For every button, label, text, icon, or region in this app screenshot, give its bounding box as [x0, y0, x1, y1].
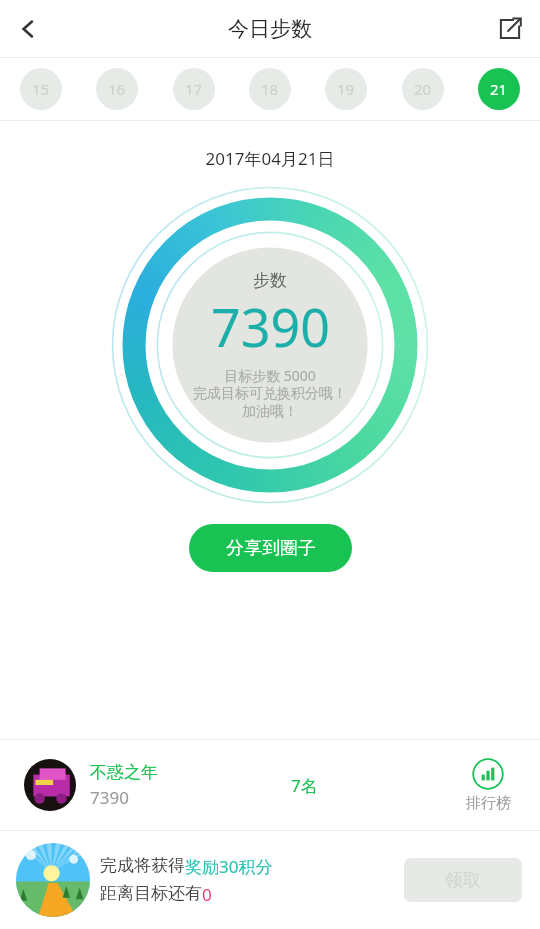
button[interactable]: Share [486, 5, 534, 53]
button[interactable]: 不惑之年 [0, 740, 540, 830]
staticText: 领取 [445, 869, 481, 892]
button[interactable]: Back [4, 5, 52, 53]
staticText: 完成将获得 [100, 855, 185, 876]
button[interactable]: 17 [173, 68, 215, 110]
staticText: 20 [414, 79, 432, 99]
staticText: 21 [490, 79, 508, 99]
staticText: 7390 [90, 786, 129, 809]
button[interactable]: 领取 [404, 858, 522, 902]
staticText: 距离目标还有 [100, 883, 202, 904]
staticText: 步数 [253, 270, 287, 291]
button[interactable]: 18 [249, 68, 291, 110]
staticText: 目标步数 5000 [0, 366, 540, 385]
staticText: 2017年04月21日 [0, 147, 540, 170]
staticText: 分享到圈子 [226, 537, 316, 560]
staticText: 18 [261, 79, 279, 99]
button[interactable]: 20 [402, 68, 444, 110]
staticText: 17 [185, 79, 203, 99]
staticText: 排行榜 [466, 794, 511, 813]
staticText: 15 [32, 79, 50, 99]
button[interactable]: 16 [96, 68, 138, 110]
staticText: 7名 [291, 774, 318, 797]
staticText: 加油哦！ [0, 403, 540, 421]
button[interactable]: 分享到圈子 [189, 524, 352, 572]
staticText: 完成目标可兑换积分哦！ [0, 385, 540, 403]
button[interactable]: 排行榜 [452, 758, 524, 813]
button[interactable]: 19 [325, 68, 367, 110]
staticText: 不惑之年 [90, 762, 158, 783]
button[interactable]: 15 [20, 68, 62, 110]
button[interactable]: 21 [478, 68, 520, 110]
staticText: 16 [108, 79, 126, 99]
staticText: 奖励30积分 [185, 855, 273, 878]
staticText: 0 [202, 883, 212, 906]
staticText: 19 [337, 79, 355, 99]
staticText: 今日步数 [228, 16, 312, 42]
staticText: 7390 [211, 291, 330, 362]
